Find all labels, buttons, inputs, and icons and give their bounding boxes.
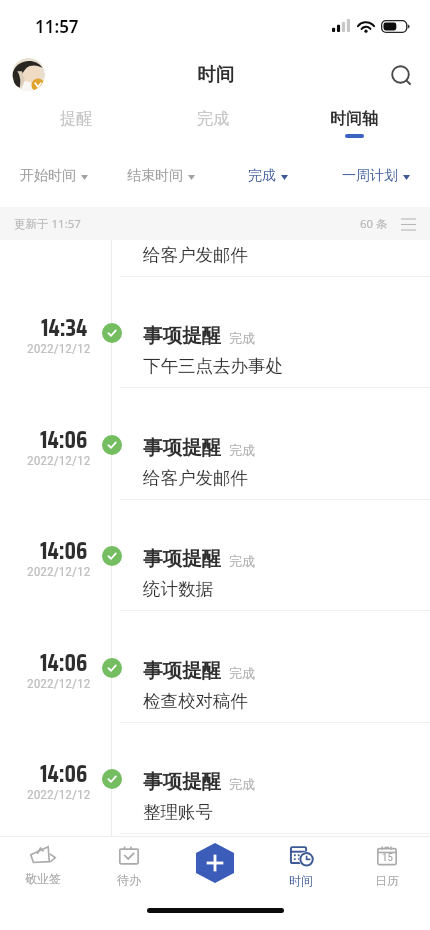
staticText: 给客户发邮件 [143,244,248,266]
staticText: 事项提醒 [143,658,221,683]
staticText: 敬业签 [25,871,61,886]
button[interactable]: 时间 [258,841,344,891]
staticText: 完成 [197,109,229,129]
button[interactable]: 结束时间 [107,158,214,194]
button[interactable]: 14:34 [0,276,430,388]
staticText: 检查校对稿件 [143,690,248,712]
staticText: 提醒 [60,109,92,129]
staticText: 60 条 [360,216,388,232]
staticText: 统计数据 [143,578,213,600]
button[interactable]: 完成 [214,158,322,194]
button[interactable]: List options [400,216,416,232]
button[interactable]: 14:06 [0,611,430,723]
staticText: 完成 [248,167,276,185]
staticText: 事项提醒 [143,323,221,348]
staticText: 2022/12/12 [27,786,91,802]
staticText: 完成 [229,776,255,792]
staticText: 14:34 [41,309,88,347]
button[interactable]: Add new [196,843,234,883]
staticText: 11:57 [35,15,79,38]
staticText: 事项提醒 [143,546,221,571]
staticText: 完成 [229,442,255,458]
staticText: 开始时间 [20,167,76,185]
staticText: 时间 [197,63,234,86]
staticText: 更新于 11:57 [14,216,81,232]
staticText: 2022/12/12 [27,452,91,468]
staticText: 完成 [229,330,255,346]
staticText: 日历 [375,873,399,888]
button[interactable]: 14:06 [0,499,430,611]
button[interactable]: 一周计划 [322,158,430,194]
staticText: 时间轴 [330,109,378,129]
button[interactable]: 时间轴 [290,104,418,142]
button[interactable]: 完成 [149,104,277,142]
button[interactable]: Profile [12,58,45,91]
staticText: 完成 [229,553,255,569]
staticText: 事项提醒 [143,435,221,460]
staticText: 2022/12/12 [27,340,91,356]
staticText: 14:06 [40,644,88,682]
staticText: 时间 [289,873,313,888]
staticText: 事项提醒 [143,769,221,794]
button[interactable]: 提醒 [12,104,140,142]
staticText: 15 [382,851,393,864]
staticText: 14:06 [40,421,88,459]
button[interactable]: 开始时间 [0,158,107,194]
staticText: 结束时间 [127,167,183,185]
button[interactable]: 15 [344,841,430,891]
staticText: 整理账号 [143,801,213,823]
staticText: 给客户发邮件 [143,467,248,489]
staticText: 2022/12/12 [27,563,91,579]
staticText: 完成 [229,665,255,681]
button[interactable]: Search [383,58,417,92]
button[interactable]: 敬业签 [0,841,86,891]
staticText: 下午三点去办事处 [143,355,283,377]
button[interactable]: 14:06 [0,722,430,834]
staticText: 2022/12/12 [27,675,91,691]
staticText: 一周计划 [342,167,398,185]
staticText: 14:06 [40,532,88,570]
staticText: 待办 [117,872,141,887]
button[interactable]: 14:06 [0,388,430,500]
button[interactable]: 待办 [86,841,172,891]
staticText: 14:06 [40,755,88,793]
